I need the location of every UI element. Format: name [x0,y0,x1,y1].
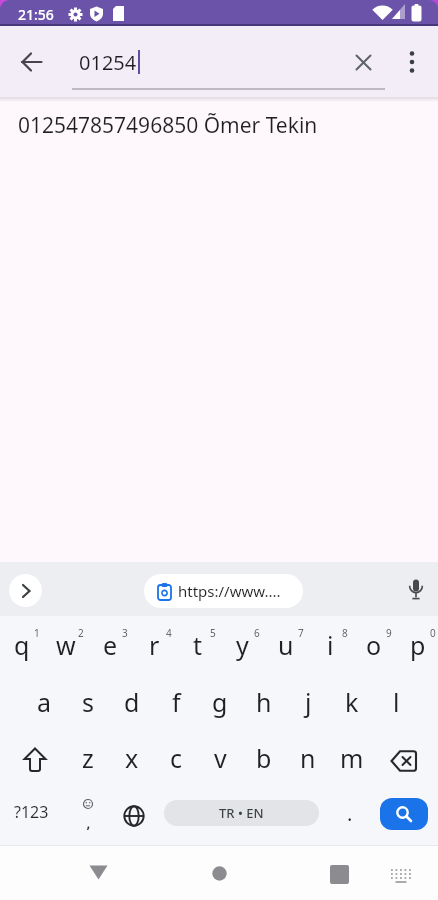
button[interactable]: m [330,731,374,785]
staticText: https://www.... [178,581,281,601]
button[interactable]: i [308,618,352,672]
button[interactable]: w [44,618,88,672]
button[interactable] [405,50,419,74]
button[interactable] [20,50,44,74]
staticText: k [345,685,359,719]
staticText: h [256,685,272,719]
staticText: 8 [342,626,348,640]
button[interactable]: v [198,731,242,785]
staticText: p [410,628,426,662]
staticText: t [193,628,203,662]
button[interactable] [390,750,418,772]
staticText: s [82,685,94,719]
button[interactable] [390,868,412,884]
button[interactable]: d [110,675,154,729]
button[interactable]: f [154,675,198,729]
button[interactable]: z [66,731,110,785]
staticText: n [300,741,316,775]
button[interactable] [355,54,372,71]
button[interactable]: r [132,618,176,672]
staticText: 2 [78,626,84,640]
button[interactable] [212,866,227,881]
button[interactable]: g [198,675,242,729]
button[interactable] [89,865,108,880]
button[interactable]: t [176,618,220,672]
button[interactable]: o [352,618,396,672]
staticText: 9 [386,626,392,640]
staticText: 21:56 [18,5,54,24]
staticText: f [172,685,181,719]
button[interactable] [23,747,47,773]
button[interactable]: x [110,731,154,785]
button[interactable]: s [66,675,110,729]
staticText: 6 [254,626,260,640]
staticText: m [340,741,364,775]
staticText: z [82,741,94,775]
staticText: 012547857496850 Õmer Tekin [18,111,318,140]
staticText: 0 [430,626,436,640]
staticText: w [56,628,76,662]
staticText: l [393,685,400,719]
staticText: 4 [166,626,172,640]
button[interactable]: l [374,675,418,729]
staticText: , [86,810,91,830]
staticText: j [305,685,312,719]
button[interactable]: https://www.... [144,574,303,608]
button[interactable]: u [264,618,308,672]
staticText: a [37,685,52,719]
button[interactable] [407,579,425,604]
staticText: r [149,628,160,662]
button[interactable]: n [286,731,330,785]
button[interactable]: , [78,810,98,830]
staticText: g [212,685,228,719]
staticText: 7 [298,626,304,640]
staticText: i [327,628,334,662]
button[interactable] [9,574,42,607]
button[interactable]: q [0,618,44,672]
button[interactable]: k [330,675,374,729]
staticText: 5 [210,626,216,640]
button[interactable]: j [286,675,330,729]
staticText: TR • EN [219,804,264,822]
staticText: b [256,741,272,775]
button[interactable]: p [396,618,438,672]
button[interactable] [123,805,145,827]
button[interactable]: e [88,618,132,672]
staticText: ?123 [14,801,49,823]
button[interactable]: ?123 [4,797,58,827]
button[interactable]: y [220,618,264,672]
staticText: e [103,628,118,662]
button[interactable] [380,798,428,830]
staticText: . [347,800,353,827]
button[interactable] [330,865,349,884]
staticText: 1 [34,626,40,640]
button[interactable]: TR • EN [164,800,319,826]
staticText: o [366,628,382,662]
button[interactable]: a [22,675,66,729]
button[interactable]: b [242,731,286,785]
staticText: d [124,685,140,719]
staticText: y [236,628,249,662]
button[interactable]: c [154,731,198,785]
staticText: c [170,741,183,775]
staticText: 3 [122,626,128,640]
staticText: u [278,628,294,662]
staticText: v [214,741,227,775]
staticText: 01254 [79,49,137,76]
button[interactable]: 012547857496850 Õmer Tekin [0,101,438,149]
button[interactable]: . [338,798,362,828]
button[interactable]: h [242,675,286,729]
staticText: q [14,628,30,662]
staticText: x [125,741,139,775]
